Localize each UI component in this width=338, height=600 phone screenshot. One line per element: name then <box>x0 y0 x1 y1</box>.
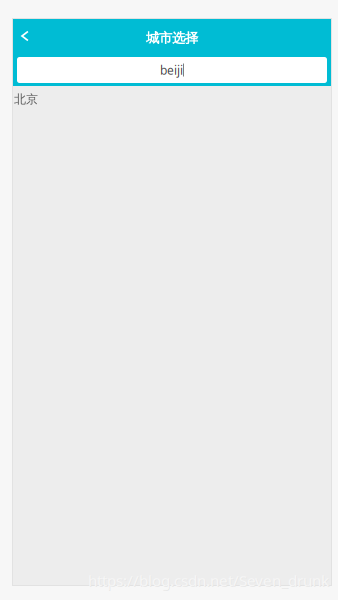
button[interactable]: beiji <box>17 57 327 83</box>
staticText: https://blog.csdn.net/Seven_drunk <box>88 570 329 591</box>
staticText: beiji <box>160 62 183 78</box>
staticText: https://blog.csdn.net/Seven_drunk <box>89 571 330 591</box>
staticText: 北京 <box>14 92 38 107</box>
staticText: 城市选择 <box>146 30 198 46</box>
button[interactable]: 北京 <box>13 86 331 112</box>
button[interactable]: Back <box>13 21 43 55</box>
